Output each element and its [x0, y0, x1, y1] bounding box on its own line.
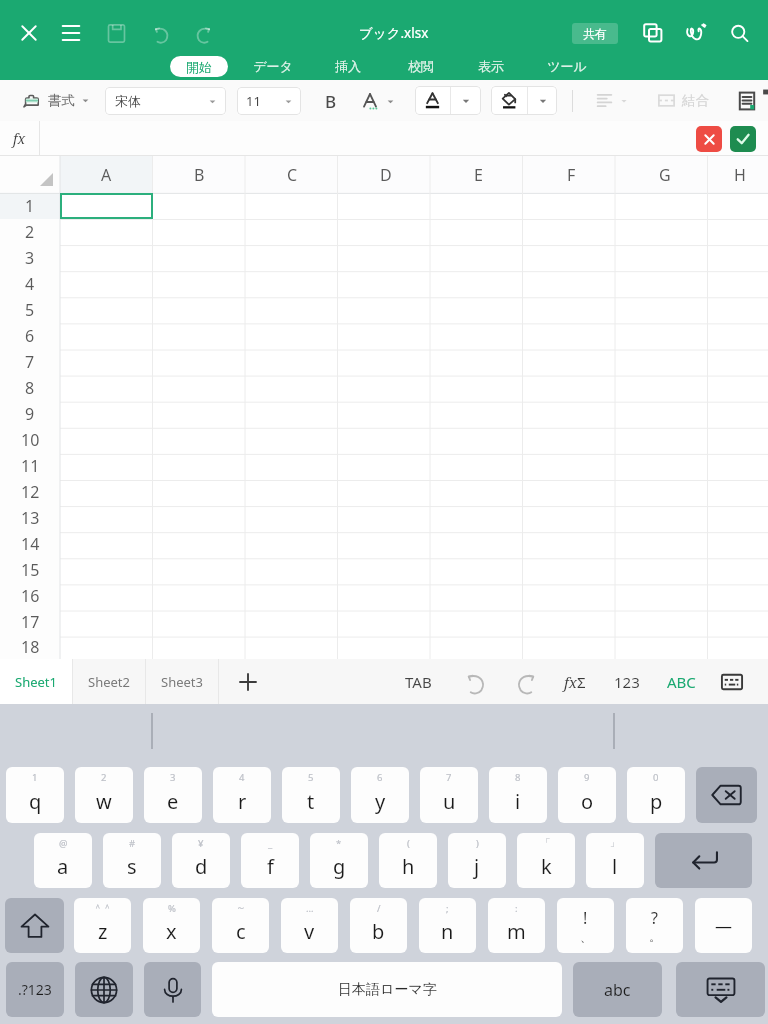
button[interactable] — [711, 479, 768, 505]
button[interactable] — [618, 609, 711, 635]
button[interactable] — [246, 245, 339, 271]
button[interactable] — [60, 323, 153, 349]
button[interactable]: / — [350, 898, 407, 953]
button[interactable] — [525, 193, 618, 219]
button[interactable]: Shift — [5, 898, 64, 953]
button[interactable] — [432, 609, 525, 635]
button[interactable] — [618, 531, 711, 557]
button[interactable] — [432, 557, 525, 583]
button[interactable]: H — [711, 156, 768, 193]
button[interactable]: 「 — [517, 833, 575, 888]
button[interactable]: 2 — [0, 219, 60, 245]
button[interactable] — [339, 297, 432, 323]
button[interactable]: 2 — [75, 767, 133, 823]
button[interactable] — [451, 86, 481, 115]
button[interactable]: 11 — [237, 87, 301, 115]
button[interactable]: ¥ — [172, 833, 230, 888]
button[interactable]: 6 — [0, 323, 60, 349]
button[interactable] — [60, 583, 153, 609]
button[interactable] — [711, 219, 768, 245]
button[interactable]: 10 — [0, 427, 60, 453]
button[interactable]: 共有 — [572, 23, 618, 44]
button[interactable]: Enter — [655, 833, 752, 888]
button[interactable]: Save — [101, 18, 131, 48]
button[interactable] — [60, 505, 153, 531]
button[interactable] — [153, 531, 246, 557]
button[interactable] — [525, 271, 618, 297]
button[interactable] — [60, 349, 153, 375]
button[interactable]: 挿入 — [327, 54, 368, 78]
button[interactable]: 13 — [0, 505, 60, 531]
button[interactable]: Backspace — [696, 767, 757, 823]
button[interactable]: % — [143, 898, 200, 953]
button[interactable]: Keyboard — [720, 670, 744, 694]
button[interactable]: Confirm — [730, 126, 756, 152]
button[interactable] — [246, 193, 339, 219]
button[interactable] — [618, 557, 711, 583]
button[interactable]: 表示 — [470, 54, 511, 78]
button[interactable]: E — [432, 156, 525, 193]
button[interactable] — [246, 271, 339, 297]
button[interactable]: 6 — [351, 767, 409, 823]
button[interactable] — [618, 323, 711, 349]
button[interactable] — [711, 453, 768, 479]
button[interactable] — [153, 245, 246, 271]
button[interactable] — [618, 401, 711, 427]
button[interactable] — [618, 505, 711, 531]
button[interactable]: Ink — [681, 18, 711, 48]
button[interactable] — [60, 557, 153, 583]
button[interactable] — [339, 193, 432, 219]
button[interactable]: Language — [75, 962, 133, 1017]
button[interactable]: 15 — [0, 557, 60, 583]
button[interactable] — [525, 505, 618, 531]
button[interactable]: Sheet2 — [73, 659, 145, 704]
button[interactable] — [246, 609, 339, 635]
button[interactable]: ! — [557, 898, 614, 953]
button[interactable] — [432, 193, 525, 219]
button[interactable] — [60, 401, 153, 427]
button[interactable]: Search — [724, 18, 754, 48]
button[interactable] — [60, 531, 153, 557]
button[interactable]: 16 — [0, 583, 60, 609]
button[interactable] — [618, 427, 711, 453]
button[interactable]: 9 — [558, 767, 616, 823]
button[interactable]: 」 — [586, 833, 644, 888]
button[interactable]: 4 — [0, 271, 60, 297]
button[interactable] — [153, 505, 246, 531]
button[interactable]: 7 — [420, 767, 478, 823]
button[interactable] — [246, 219, 339, 245]
button[interactable] — [711, 193, 768, 219]
button[interactable]: Cell format — [737, 91, 757, 111]
button[interactable]: 14 — [0, 531, 60, 557]
button[interactable] — [60, 609, 153, 635]
button[interactable]: ? — [626, 898, 683, 953]
button[interactable] — [432, 245, 525, 271]
button[interactable] — [339, 479, 432, 505]
button[interactable]: 5 — [282, 767, 340, 823]
button[interactable]: 7 — [0, 349, 60, 375]
button[interactable]: Voice — [144, 962, 201, 1017]
button[interactable] — [618, 219, 711, 245]
button[interactable]: 3 — [144, 767, 202, 823]
button[interactable] — [153, 193, 246, 219]
button[interactable] — [246, 297, 339, 323]
button[interactable]: 校閲 — [400, 54, 441, 78]
button[interactable] — [339, 219, 432, 245]
button[interactable] — [246, 349, 339, 375]
button[interactable] — [618, 245, 711, 271]
button[interactable]: データ — [245, 54, 300, 78]
button[interactable] — [246, 635, 339, 659]
